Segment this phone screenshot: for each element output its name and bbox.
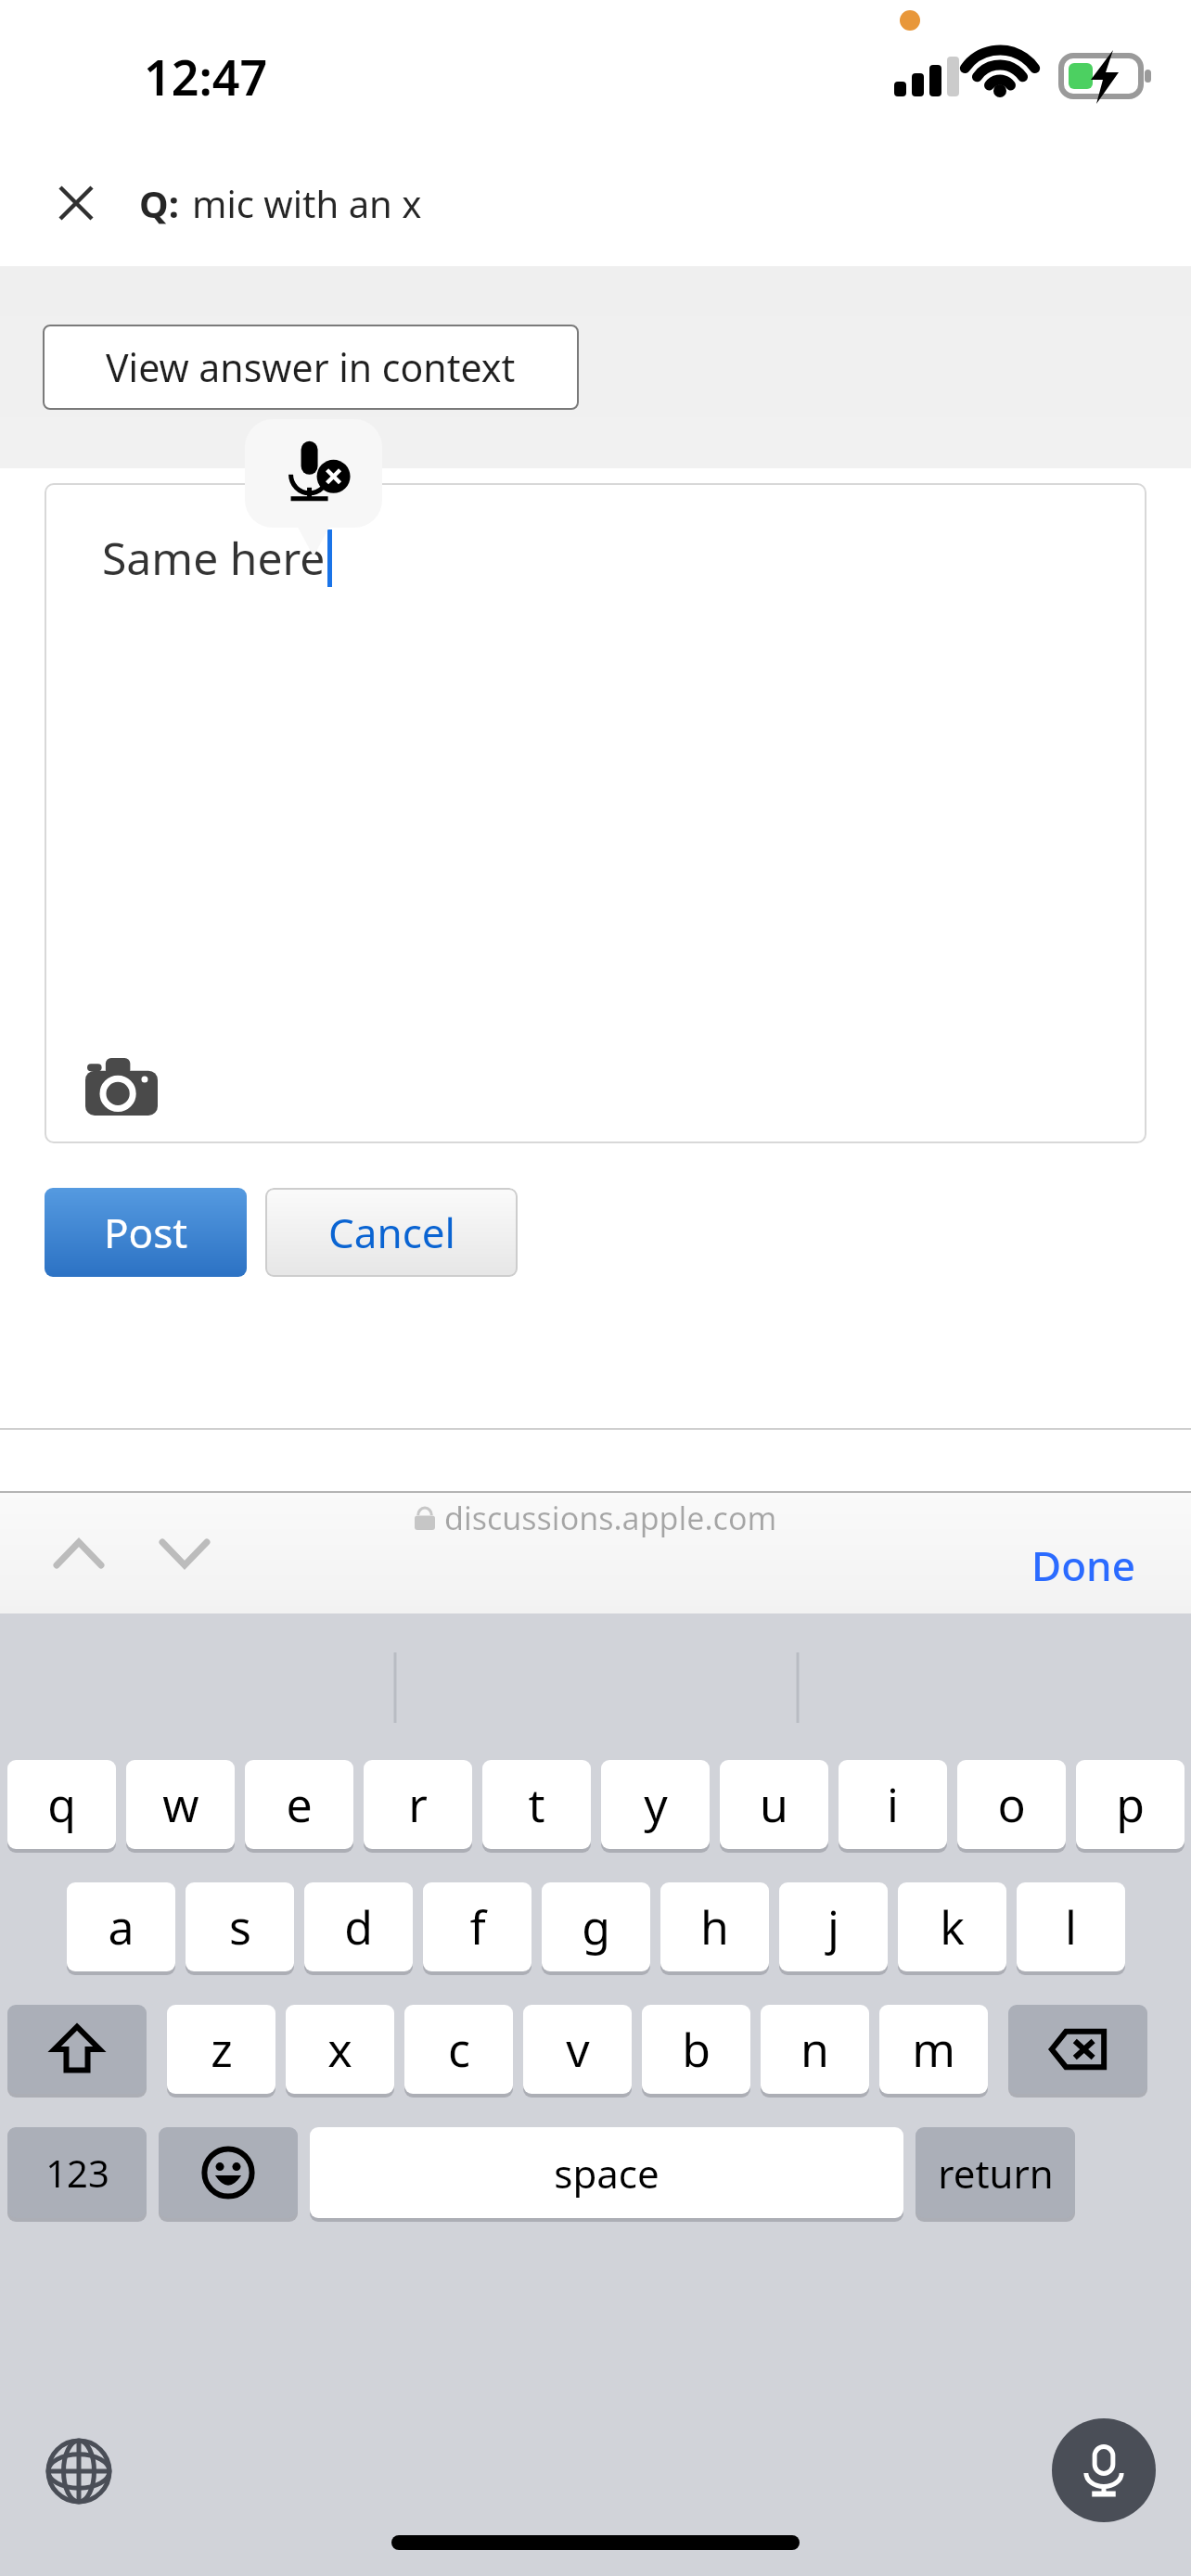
button[interactable]: Next field xyxy=(145,1513,224,1593)
staticText: t xyxy=(528,1773,545,1836)
button[interactable]: Shift xyxy=(7,2005,147,2094)
staticText: discussions.apple.com xyxy=(444,1497,777,1539)
button[interactable]: c xyxy=(404,2005,513,2094)
button[interactable]: Post xyxy=(45,1188,247,1277)
staticText: e xyxy=(286,1773,313,1836)
staticText: 12:47 xyxy=(144,44,268,109)
button[interactable]: Close xyxy=(41,168,111,238)
button[interactable]: u xyxy=(720,1760,828,1849)
button[interactable]: t xyxy=(482,1760,591,1849)
button[interactable]: b xyxy=(642,2005,750,2094)
button[interactable]: g xyxy=(542,1882,650,1971)
button[interactable]: Delete xyxy=(1008,2005,1147,2094)
staticText: y xyxy=(644,1773,668,1836)
button[interactable]: m xyxy=(879,2005,988,2094)
staticText: return xyxy=(938,2147,1054,2200)
staticText: m xyxy=(912,2018,955,2081)
button[interactable]: l xyxy=(1017,1882,1125,1971)
button[interactable]: Previous field xyxy=(39,1513,119,1593)
button[interactable]: x xyxy=(286,2005,394,2094)
staticText: v xyxy=(566,2018,590,2081)
button[interactable]: Emoji xyxy=(159,2127,298,2218)
staticText: i xyxy=(887,1773,899,1836)
button[interactable]: Add photo xyxy=(85,1058,158,1116)
staticText: k xyxy=(940,1895,965,1958)
button[interactable]: s xyxy=(186,1882,294,1971)
button[interactable]: z xyxy=(167,2005,275,2094)
staticText: w xyxy=(162,1773,199,1836)
staticText: b xyxy=(682,2018,711,2081)
button[interactable]: w xyxy=(126,1760,235,1849)
button[interactable]: 123 xyxy=(7,2127,147,2218)
staticText: c xyxy=(448,2018,470,2081)
staticText: j xyxy=(827,1895,839,1958)
staticText: space xyxy=(554,2147,660,2200)
staticText: mic with an x xyxy=(192,178,422,228)
staticText: s xyxy=(229,1895,251,1958)
button[interactable]: a xyxy=(67,1882,175,1971)
button[interactable]: Change keyboard xyxy=(35,2428,122,2515)
button[interactable]: n xyxy=(761,2005,869,2094)
button[interactable]: h xyxy=(660,1882,769,1971)
button[interactable]: Cancel xyxy=(265,1188,518,1277)
button[interactable]: j xyxy=(779,1882,888,1971)
button[interactable]: Same here xyxy=(45,483,1146,1143)
button[interactable]: v xyxy=(523,2005,632,2094)
button[interactable]: r xyxy=(364,1760,472,1849)
staticText: Q: xyxy=(139,178,179,228)
staticText: a xyxy=(108,1895,134,1958)
staticText: n xyxy=(800,2018,829,2081)
button[interactable]: i xyxy=(839,1760,947,1849)
button[interactable]: p xyxy=(1076,1760,1185,1849)
staticText: r xyxy=(408,1773,428,1836)
staticText: o xyxy=(997,1773,1026,1836)
button[interactable]: f xyxy=(423,1882,531,1971)
staticText: View answer in context xyxy=(106,341,516,393)
button[interactable]: d xyxy=(304,1882,413,1971)
button[interactable]: space xyxy=(310,2127,903,2218)
button[interactable]: return xyxy=(916,2127,1075,2218)
staticText: g xyxy=(582,1895,610,1958)
staticText: Done xyxy=(1031,1537,1135,1593)
staticText: Same here xyxy=(102,528,326,588)
button[interactable]: y xyxy=(601,1760,710,1849)
button[interactable]: Done xyxy=(1018,1530,1148,1600)
staticText: x xyxy=(327,2018,352,2081)
button[interactable]: q xyxy=(7,1760,116,1849)
staticText: u xyxy=(760,1773,788,1836)
button[interactable]: Dictation xyxy=(1052,2418,1156,2522)
button[interactable]: e xyxy=(245,1760,353,1849)
staticText: d xyxy=(344,1895,373,1958)
button[interactable]: k xyxy=(898,1882,1006,1971)
staticText: 123 xyxy=(45,2148,109,2198)
staticText: Cancel xyxy=(328,1205,455,1260)
staticText: l xyxy=(1065,1895,1077,1958)
staticText: q xyxy=(47,1773,76,1836)
staticText: p xyxy=(1116,1773,1145,1836)
button[interactable]: View answer in context xyxy=(43,325,579,410)
staticText: h xyxy=(700,1895,729,1958)
staticText: f xyxy=(469,1895,486,1958)
staticText: Post xyxy=(104,1205,188,1260)
staticText: z xyxy=(211,2018,233,2081)
button[interactable]: o xyxy=(957,1760,1066,1849)
